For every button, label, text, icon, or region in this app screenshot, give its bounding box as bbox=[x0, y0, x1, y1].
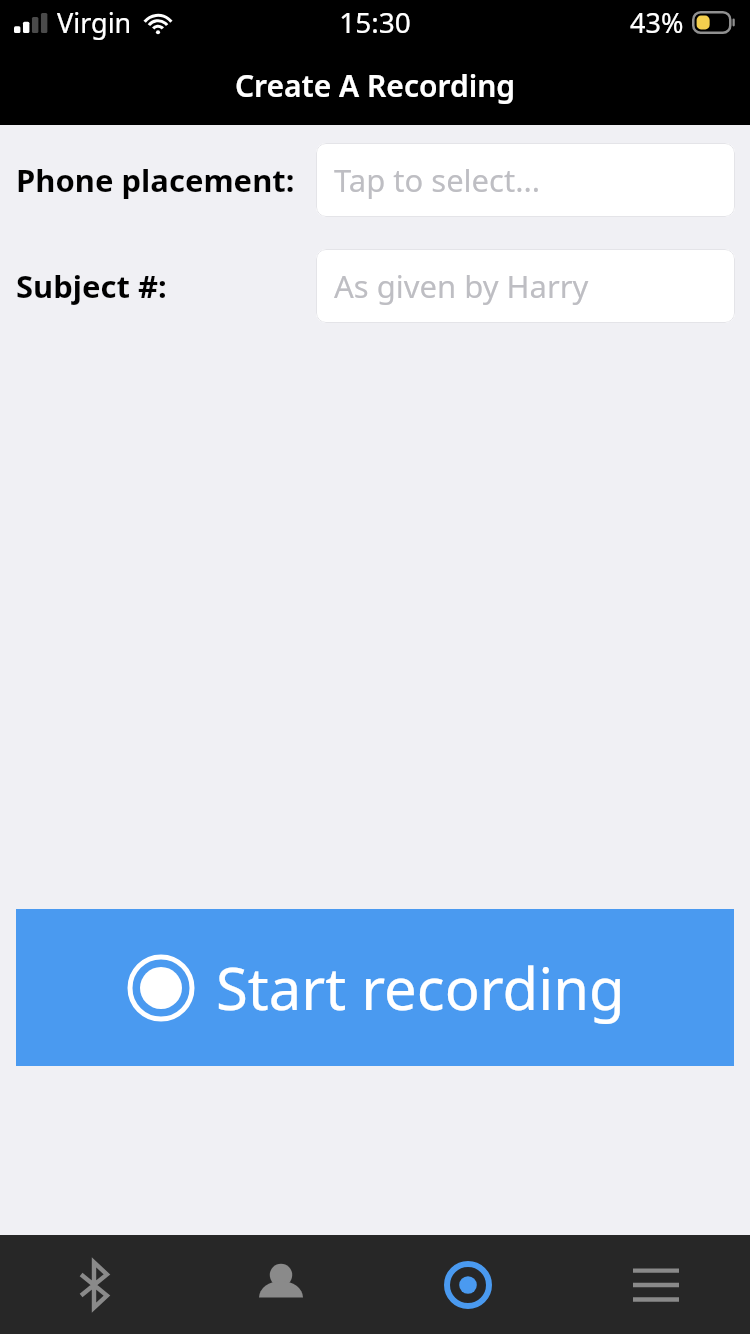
button[interactable]: Start recording bbox=[16, 909, 734, 1066]
button[interactable]: Profile bbox=[187, 1235, 374, 1334]
staticText: Start recording bbox=[216, 948, 625, 1027]
staticText: Subject #: bbox=[16, 265, 167, 307]
staticText: Create A Recording bbox=[0, 65, 750, 106]
button[interactable]: Bluetooth bbox=[0, 1235, 187, 1334]
button[interactable]: Menu bbox=[562, 1235, 750, 1334]
staticText: Phone placement: bbox=[16, 159, 295, 201]
button[interactable]: As given by Harry bbox=[316, 249, 735, 323]
button[interactable]: Tap to select... bbox=[316, 143, 735, 217]
staticText: 43% bbox=[630, 4, 684, 41]
staticText: Virgin bbox=[57, 4, 132, 41]
staticText: Tap to select... bbox=[334, 159, 541, 201]
staticText: 15:30 bbox=[339, 3, 411, 41]
button[interactable]: Record bbox=[374, 1235, 562, 1334]
staticText: As given by Harry bbox=[334, 265, 589, 307]
